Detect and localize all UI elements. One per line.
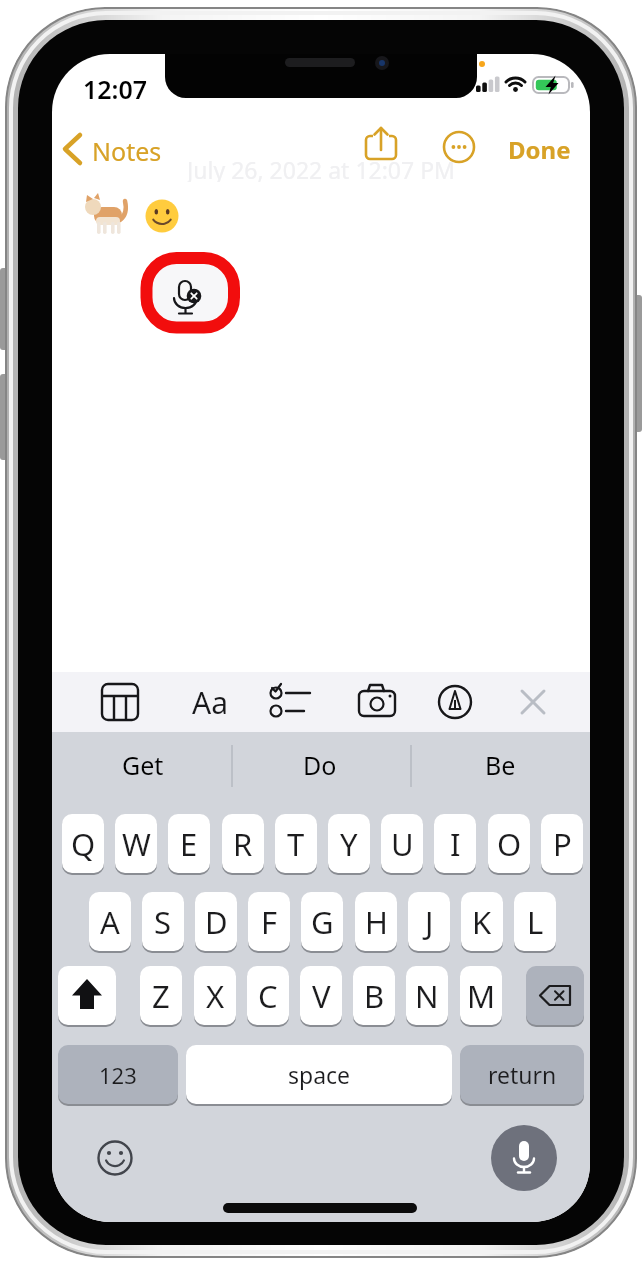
button[interactable]: N bbox=[406, 966, 448, 1025]
button[interactable]: V bbox=[300, 966, 342, 1025]
staticText: P bbox=[553, 823, 572, 865]
button[interactable]: C bbox=[247, 966, 289, 1025]
button[interactable]: T bbox=[275, 814, 317, 873]
button[interactable] bbox=[502, 126, 582, 166]
staticText: R bbox=[233, 823, 253, 865]
button[interactable]: K bbox=[461, 892, 503, 951]
button[interactable]: Z bbox=[140, 966, 182, 1025]
staticText: N bbox=[415, 975, 439, 1017]
staticText: O bbox=[497, 823, 522, 865]
button[interactable]: B bbox=[353, 966, 395, 1025]
staticText: J bbox=[425, 901, 434, 943]
staticText: Z bbox=[152, 975, 170, 1017]
button[interactable]: Get bbox=[72, 744, 214, 786]
button[interactable]: L bbox=[514, 892, 556, 951]
button[interactable] bbox=[433, 678, 477, 726]
button[interactable]: W bbox=[115, 814, 157, 873]
staticText: Be bbox=[485, 748, 516, 782]
staticText: B bbox=[364, 975, 385, 1017]
staticText: July 26, 2022 at 12:07 PM bbox=[187, 154, 455, 182]
button[interactable] bbox=[353, 678, 401, 726]
button[interactable] bbox=[526, 966, 584, 1025]
button[interactable]: A bbox=[89, 892, 131, 951]
staticText: U bbox=[391, 823, 414, 865]
staticText: D bbox=[205, 901, 228, 943]
button[interactable]: space bbox=[186, 1045, 452, 1104]
button[interactable] bbox=[511, 680, 555, 724]
staticText: I bbox=[450, 823, 461, 865]
staticText: Get bbox=[122, 748, 164, 782]
staticText: Done bbox=[508, 133, 571, 166]
staticText: T bbox=[287, 823, 305, 865]
staticText: E bbox=[180, 823, 198, 865]
staticText: space bbox=[288, 1059, 351, 1090]
button[interactable]: E bbox=[168, 814, 210, 873]
button[interactable]: Q bbox=[62, 814, 104, 873]
button[interactable]: H bbox=[355, 892, 397, 951]
staticText: 123 bbox=[99, 1060, 137, 1090]
button[interactable]: 123 bbox=[58, 1045, 178, 1104]
staticText: Y bbox=[340, 823, 358, 865]
staticText: G bbox=[311, 901, 334, 943]
button[interactable]: Be bbox=[429, 744, 571, 786]
button[interactable] bbox=[96, 678, 144, 726]
staticText: Notes bbox=[92, 134, 162, 168]
button[interactable] bbox=[360, 122, 404, 166]
button[interactable]: O bbox=[488, 814, 530, 873]
button[interactable]: S bbox=[142, 892, 184, 951]
button[interactable] bbox=[58, 966, 116, 1025]
button[interactable]: U bbox=[381, 814, 423, 873]
button[interactable]: R bbox=[222, 814, 264, 873]
staticText: W bbox=[122, 823, 151, 865]
button[interactable]: I bbox=[434, 814, 476, 873]
button[interactable] bbox=[92, 1135, 138, 1181]
staticText: X bbox=[206, 975, 225, 1017]
button[interactable] bbox=[186, 678, 234, 726]
button[interactable]: M bbox=[460, 966, 502, 1025]
button[interactable] bbox=[60, 126, 210, 172]
staticText: Do bbox=[303, 748, 337, 782]
button[interactable]: F bbox=[248, 892, 290, 951]
staticText: F bbox=[261, 901, 278, 943]
staticText: M bbox=[467, 975, 496, 1017]
button[interactable]: Do bbox=[249, 744, 391, 786]
button[interactable] bbox=[491, 1125, 557, 1191]
staticText: S bbox=[154, 901, 172, 943]
button[interactable]: Y bbox=[328, 814, 370, 873]
staticText: K bbox=[472, 901, 492, 943]
button[interactable]: return bbox=[460, 1045, 584, 1104]
staticText: 12:07 bbox=[83, 72, 148, 106]
staticText: C bbox=[258, 975, 278, 1017]
staticText: H bbox=[365, 901, 388, 943]
button[interactable]: P bbox=[541, 814, 583, 873]
staticText: L bbox=[527, 901, 544, 943]
staticText: V bbox=[312, 975, 331, 1017]
staticText: Aa bbox=[192, 682, 228, 722]
button[interactable] bbox=[256, 678, 316, 726]
button[interactable]: X bbox=[194, 966, 236, 1025]
button[interactable]: J bbox=[408, 892, 450, 951]
button[interactable]: D bbox=[195, 892, 237, 951]
staticText: return bbox=[488, 1059, 557, 1090]
staticText: A bbox=[100, 901, 120, 943]
button[interactable] bbox=[440, 128, 478, 166]
button[interactable]: G bbox=[301, 892, 343, 951]
staticText: Q bbox=[71, 823, 96, 865]
